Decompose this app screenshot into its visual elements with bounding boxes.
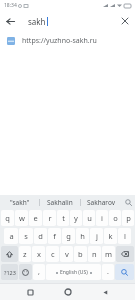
button[interactable]: Emoji (19, 264, 32, 280)
button[interactable]: "sakh" (0, 195, 39, 209)
staticText: "sakh" (10, 198, 30, 207)
button[interactable]: Home (60, 284, 76, 300)
button[interactable]: English (US) (46, 264, 101, 280)
button[interactable]: a (4, 228, 18, 244)
button[interactable]: p (122, 210, 134, 226)
staticText: w (19, 213, 25, 223)
button[interactable]: f (48, 228, 61, 244)
button[interactable]: z (19, 246, 31, 262)
staticText: d (38, 231, 43, 241)
button[interactable]: c (46, 246, 59, 262)
button[interactable]: Sakhalin (40, 195, 80, 209)
button[interactable]: Search (115, 264, 134, 280)
button[interactable]: u (83, 210, 95, 226)
staticText: ?123 (4, 269, 16, 276)
button[interactable]: e (29, 210, 42, 226)
button[interactable]: v (60, 246, 73, 262)
button[interactable]: Recents (22, 284, 38, 300)
staticText: sakh (28, 16, 46, 27)
button[interactable]: h (76, 228, 89, 244)
staticText: . (107, 267, 109, 277)
staticText: u (87, 213, 92, 223)
staticText: Sakhalin (47, 198, 73, 207)
staticText: j (96, 231, 98, 241)
staticText: o (113, 213, 118, 223)
staticText: 18:34 (4, 2, 17, 9)
staticText: b (78, 249, 83, 259)
staticText: z (23, 249, 27, 259)
button[interactable]: r (43, 210, 56, 226)
staticText: s (24, 231, 28, 241)
button[interactable]: , (33, 264, 45, 280)
staticText: a (9, 231, 14, 241)
staticText: y (74, 213, 78, 223)
button[interactable]: d (34, 228, 47, 244)
staticText: f (53, 231, 56, 241)
button[interactable]: i (96, 210, 108, 226)
button[interactable]: m (102, 246, 115, 262)
staticText: r (48, 213, 52, 223)
staticText: g (66, 231, 71, 241)
button[interactable]: Back (0, 11, 20, 31)
staticText: h (80, 231, 85, 241)
staticText: t (62, 213, 65, 223)
staticText: https://yuzhno-sakh.ru (22, 36, 97, 46)
button[interactable]: y (70, 210, 82, 226)
staticText: c (51, 249, 55, 259)
staticText: l (124, 231, 126, 241)
button[interactable]: q (1, 210, 14, 226)
staticText: Sakharov (87, 198, 116, 207)
button[interactable]: . (102, 264, 114, 280)
button[interactable]: https://yuzhno-sakh.ru (0, 32, 135, 49)
button[interactable]: j (90, 228, 103, 244)
staticText: k (108, 231, 113, 241)
staticText: English (US) (60, 269, 88, 276)
button[interactable]: k (104, 228, 117, 244)
button[interactable]: s (19, 228, 33, 244)
button[interactable]: x (32, 246, 45, 262)
button[interactable]: t (57, 210, 69, 226)
button[interactable]: Back (97, 284, 113, 300)
button[interactable]: l (118, 228, 131, 244)
button[interactable]: Clear (115, 11, 135, 31)
staticText: q (5, 213, 10, 223)
button[interactable]: g (62, 228, 75, 244)
button[interactable]: Shift (1, 246, 18, 262)
button[interactable]: b (74, 246, 87, 262)
button[interactable]: n (88, 246, 101, 262)
button[interactable]: Sakharov (81, 195, 121, 209)
staticText: , (38, 267, 40, 277)
button[interactable]: w (15, 210, 28, 226)
staticText: x (37, 249, 41, 259)
button[interactable]: ?123 (1, 264, 18, 280)
button[interactable]: Expand suggestions (121, 195, 135, 209)
staticText: e (33, 213, 38, 223)
button[interactable]: o (109, 210, 121, 226)
staticText: v (65, 249, 69, 259)
staticText: i (101, 213, 103, 223)
button[interactable]: Backspace (116, 246, 134, 262)
staticText: m (105, 249, 113, 259)
staticText: p (126, 213, 131, 223)
staticText: n (92, 249, 97, 259)
